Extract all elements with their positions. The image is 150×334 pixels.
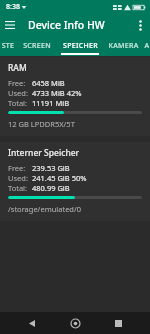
staticText: Used: [8,88,28,98]
staticText: 6458 MiB [32,78,65,88]
button[interactable]: SCREEN [16,36,57,56]
staticText: SPEICHER [63,41,98,51]
staticText: KAMERA [108,41,139,51]
staticText: Used: [8,173,28,183]
staticText: Total: [8,183,28,193]
staticText: 12 GB LPDDR5X/5T [8,119,75,129]
button[interactable]: Home [64,312,86,334]
staticText: 239.53 GiB [32,163,70,173]
button[interactable]: Recent apps [107,312,129,334]
staticText: 4733 MiB 42% [32,88,82,98]
button[interactable]: Back [21,312,43,334]
staticText: Interner Speicher [8,147,80,159]
button[interactable]: STEM [0,36,16,56]
staticText: 241.45 GiB 50% [32,173,87,183]
staticText: SCREEN [23,41,51,51]
staticText: 11191 MiB [32,98,70,108]
staticText: 8:38 [6,2,20,12]
staticText: /storage/emulated/0 [8,204,82,214]
staticText: Free: [8,78,26,88]
staticText: RAM [8,62,27,74]
button[interactable]: SPEICHER [57,36,103,56]
staticText: AKK [144,41,150,51]
button[interactable]: Interner Speicher [0,142,150,221]
staticText: Total: [8,98,28,108]
staticText: Free: [8,163,26,173]
staticText: STEM [0,41,16,51]
button[interactable]: AKK [144,36,150,56]
button[interactable]: More options [130,15,150,35]
staticText: 480.99 GiB [32,183,70,193]
button[interactable]: Open navigation drawer [0,15,20,35]
button[interactable]: RAM [0,57,150,136]
staticText: Device Info HW [28,18,105,32]
button[interactable]: KAMERA [103,36,144,56]
